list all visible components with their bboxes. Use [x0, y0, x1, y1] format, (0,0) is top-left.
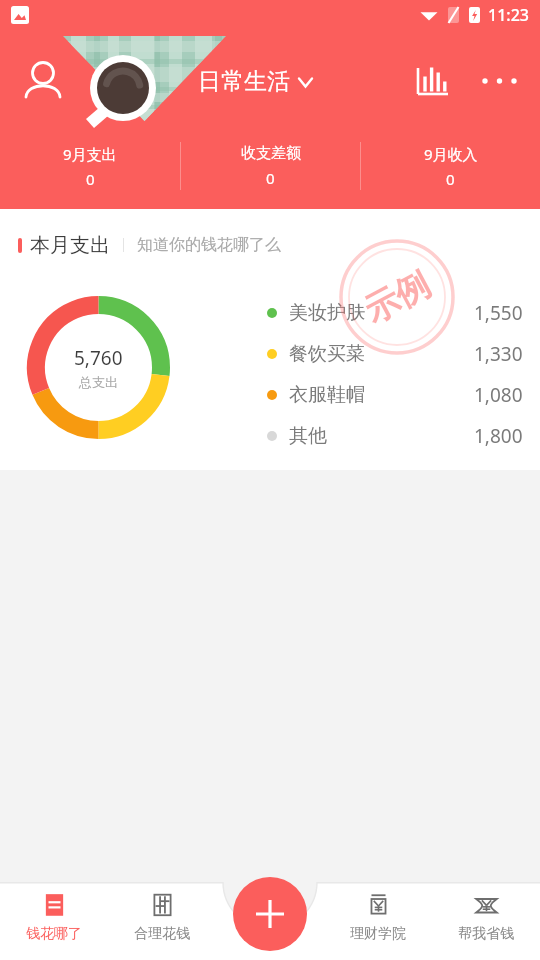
button[interactable]: 9月支出	[0, 137, 180, 195]
staticText: 钱花哪了	[26, 925, 82, 943]
staticText: 美妆护肤	[289, 301, 365, 325]
staticText: 餐饮买菜	[289, 342, 365, 366]
staticText: 1,080	[474, 382, 523, 408]
staticText: 总支出	[79, 374, 118, 390]
staticText: 其他	[289, 424, 327, 448]
staticText: 9月收入	[424, 144, 478, 164]
button[interactable]: Statistics	[406, 56, 456, 106]
button[interactable]: 9月收入	[361, 137, 540, 195]
staticText: 收支差额	[241, 144, 301, 163]
staticText: 日常生活	[198, 67, 290, 96]
staticText: 帮我省钱	[458, 925, 514, 943]
staticText: 1,800	[474, 423, 523, 449]
staticText: 0	[446, 169, 455, 189]
staticText: 1,550	[474, 300, 523, 326]
staticText: 9月支出	[63, 144, 117, 164]
button[interactable]: 日常生活	[198, 56, 314, 106]
staticText: 示例	[357, 263, 437, 332]
staticText: 11:23	[488, 4, 529, 26]
button[interactable]: 帮我省钱	[432, 882, 540, 960]
staticText: 合理花钱	[134, 925, 190, 943]
staticText: 5,760	[74, 345, 123, 371]
button[interactable]: 收支差额	[181, 137, 360, 195]
staticText: 本月支出	[30, 233, 110, 258]
staticText: 0	[86, 169, 95, 189]
button[interactable]: 其他	[264, 416, 523, 456]
button[interactable]: 本月支出	[18, 231, 281, 259]
button[interactable]: 理财学院	[324, 882, 432, 960]
button[interactable]: Add record	[233, 877, 307, 951]
button[interactable]: 衣服鞋帽	[264, 375, 523, 415]
button[interactable]: More options	[476, 56, 526, 106]
staticText: 理财学院	[350, 925, 406, 943]
staticText: 知道你的钱花哪了么	[137, 235, 281, 255]
button[interactable]: 合理花钱	[108, 882, 216, 960]
button[interactable]: 美妆护肤	[264, 293, 523, 333]
staticText: 0	[266, 168, 275, 188]
button[interactable]: 钱花哪了	[0, 882, 108, 960]
staticText: 1,330	[474, 341, 523, 367]
button[interactable]: Profile	[18, 56, 68, 106]
staticText: 衣服鞋帽	[289, 383, 365, 407]
button[interactable]: 餐饮买菜	[264, 334, 523, 374]
